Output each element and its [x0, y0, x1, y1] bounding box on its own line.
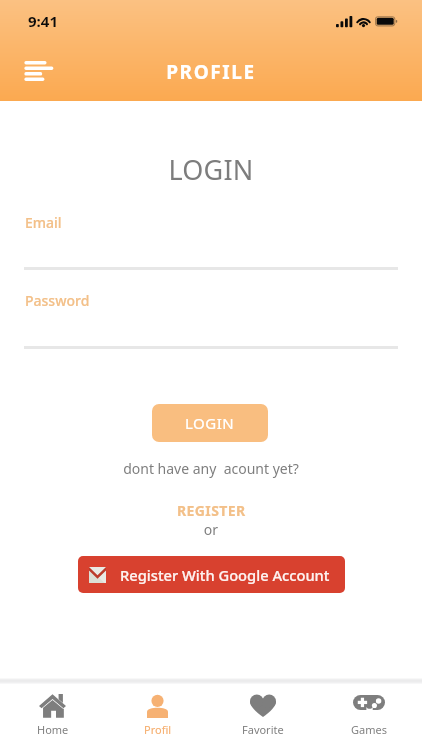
staticText: LOGIN	[0, 151, 422, 188]
staticText: or	[0, 520, 422, 539]
button[interactable]: Register With Google Account	[78, 556, 345, 593]
staticText: LOGIN	[185, 413, 235, 433]
staticText: PROFILE	[0, 59, 422, 85]
staticText: Email	[25, 213, 62, 232]
staticText: REGISTER	[177, 501, 246, 520]
button[interactable]: REGISTER	[170, 500, 252, 520]
button[interactable]: Favorite	[210, 682, 316, 750]
staticText: Home	[37, 722, 69, 737]
button[interactable]: Home	[0, 682, 105, 750]
button[interactable]: Games	[316, 682, 422, 750]
staticText: Profil	[144, 722, 172, 737]
button[interactable]: Menu	[16, 53, 60, 89]
staticText: dont have any acount yet?	[0, 459, 422, 478]
button[interactable]: LOGIN	[152, 404, 268, 442]
staticText: Register With Google Account	[120, 565, 330, 585]
staticText: Favorite	[242, 722, 284, 737]
staticText: 9:41	[28, 11, 58, 31]
staticText: Games	[351, 722, 387, 737]
staticText: Password	[25, 291, 90, 310]
button[interactable]: Profil	[105, 682, 210, 750]
